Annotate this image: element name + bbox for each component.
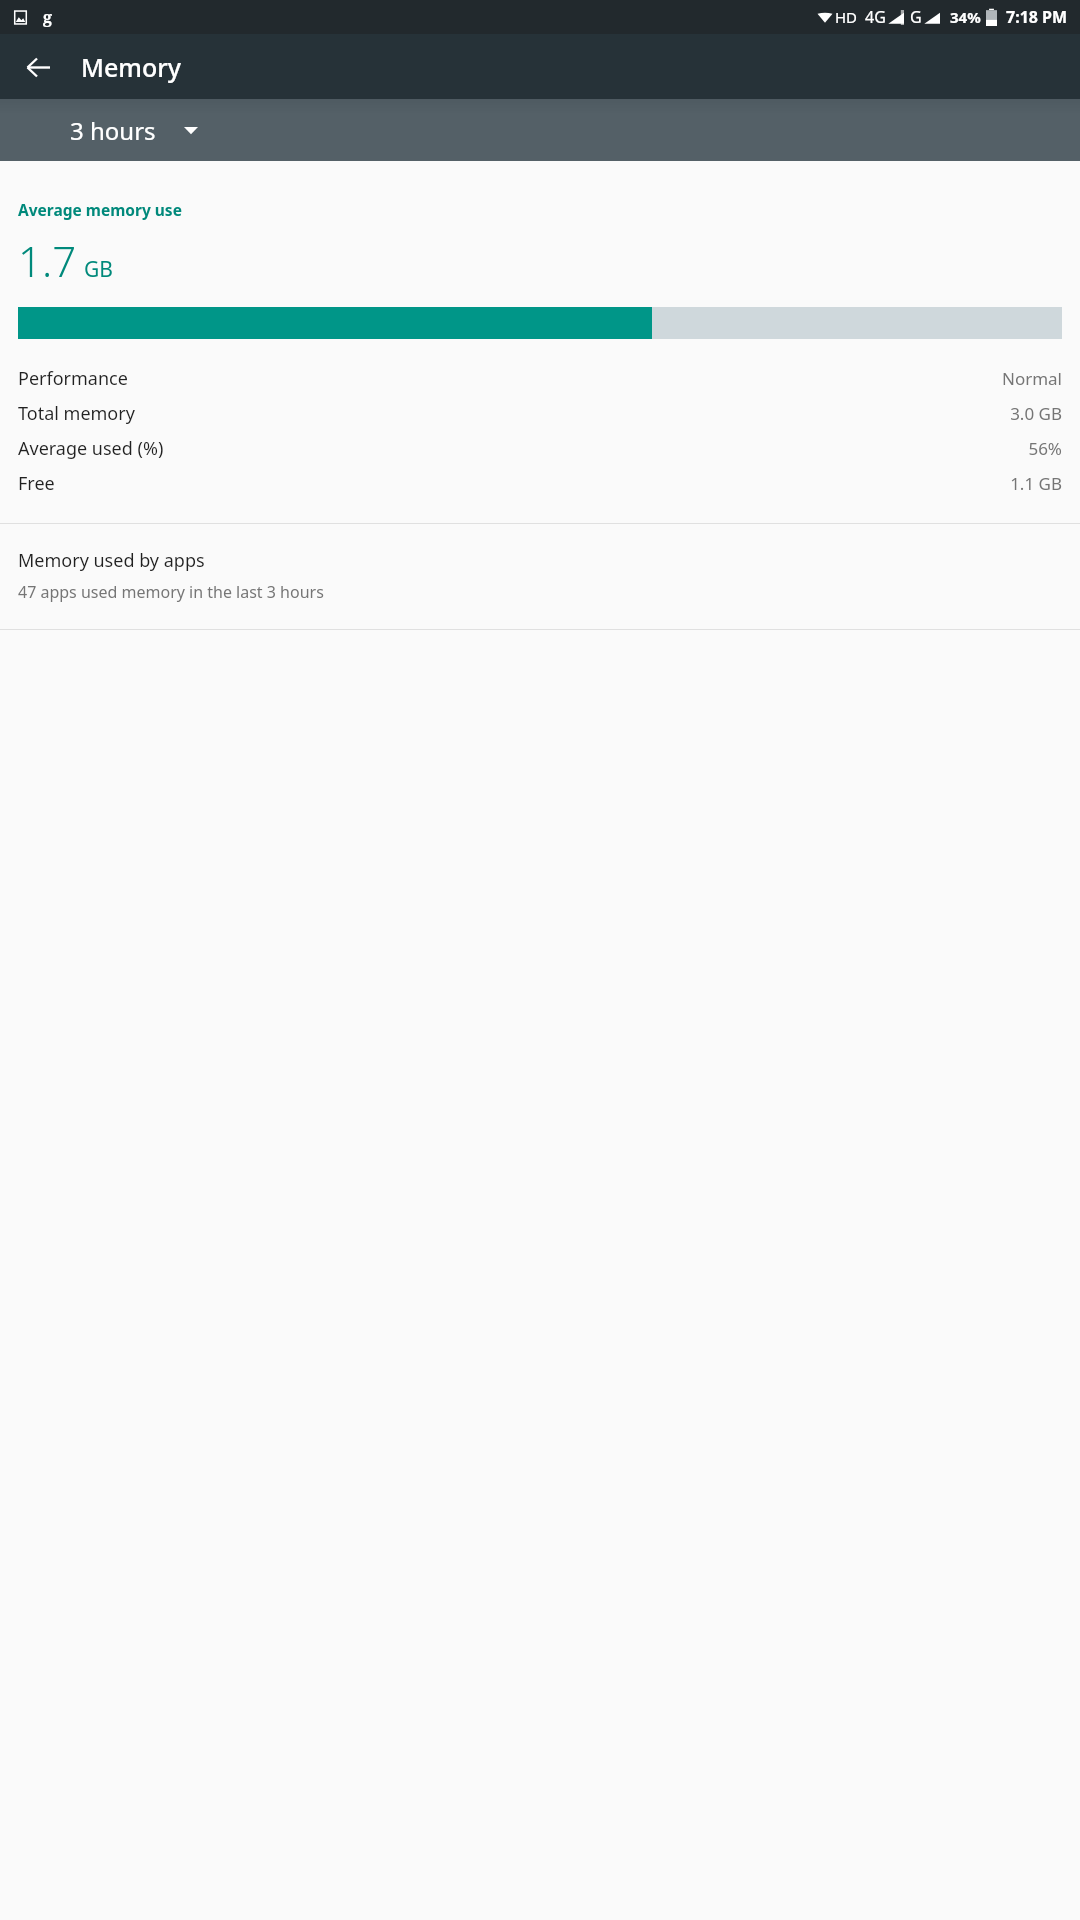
staticText: 3.0 GB <box>1010 402 1062 425</box>
staticText: Memory <box>81 50 182 84</box>
staticText: G <box>910 6 922 28</box>
staticText: 3 hours <box>70 114 156 147</box>
staticText: Total memory <box>18 401 135 426</box>
button[interactable]: Total memory <box>0 396 1080 431</box>
button[interactable]: Back <box>14 43 62 91</box>
staticText: 7:18 PM <box>1006 6 1068 28</box>
staticText: 1.7 <box>18 232 77 289</box>
staticText: Free <box>18 471 55 496</box>
staticText: Average memory use <box>18 199 182 220</box>
staticText: Performance <box>18 366 128 391</box>
staticText: HD <box>835 7 858 27</box>
staticText: g <box>43 6 52 28</box>
button[interactable]: Free <box>0 466 1080 501</box>
button[interactable]: Performance <box>0 361 1080 396</box>
button[interactable]: Memory used by apps <box>0 524 1080 629</box>
button[interactable]: 3 hours <box>66 106 202 155</box>
staticText: 4G <box>865 6 886 28</box>
staticText: Average used (%) <box>18 436 164 461</box>
staticText: 34% <box>950 7 981 27</box>
staticText: Normal <box>1001 367 1062 390</box>
staticText: Memory used by apps <box>18 548 205 573</box>
staticText: 56% <box>1028 437 1062 460</box>
button[interactable]: Average used (%) <box>0 431 1080 466</box>
staticText: GB <box>84 255 113 284</box>
staticText: 1.1 GB <box>1010 472 1062 495</box>
staticText: 47 apps used memory in the last 3 hours <box>18 581 324 603</box>
